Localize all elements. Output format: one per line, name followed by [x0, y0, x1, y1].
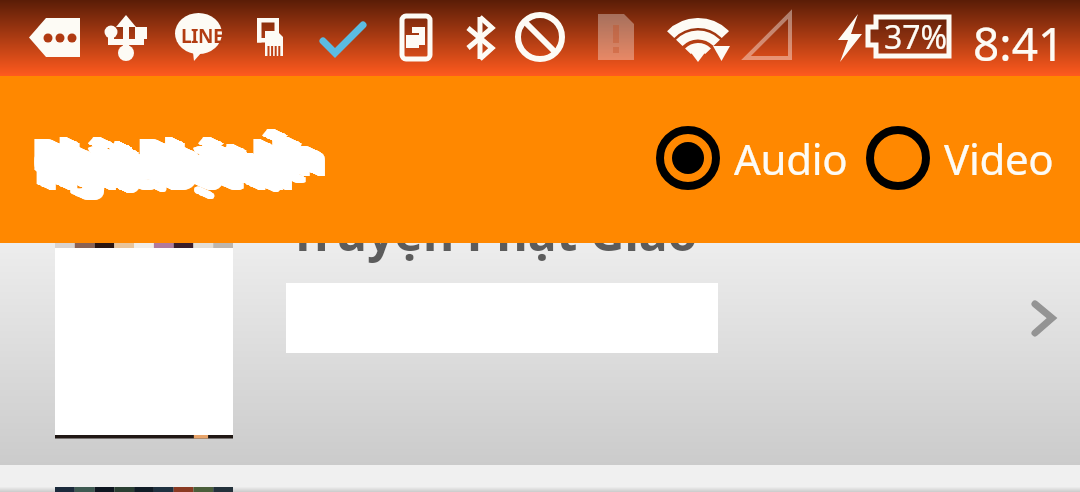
staticText: Chuyện Phật: [33, 131, 294, 190]
staticText: Phật Pháp Ứn: [44, 130, 328, 189]
staticText: Nghe Đọc Ki: [34, 138, 283, 197]
staticText: Nghe Đọc Ki: [41, 142, 290, 201]
staticText: Chuyện Phật: [42, 136, 303, 195]
staticText: Phật Pháp Ứn: [35, 126, 319, 185]
staticText: Chuyện Phật: [37, 133, 298, 192]
staticText: Chuyện Phật: [32, 131, 293, 190]
staticText: Nghe Đọc Ki: [45, 144, 294, 203]
staticText: Chuyện Phật: [34, 132, 295, 191]
staticText: Chuyện Phật: [40, 135, 301, 194]
staticText: Audio: [734, 130, 848, 187]
staticText: Phật Pháp Ứn: [33, 125, 317, 184]
staticText: Chuyện Phật: [44, 137, 305, 196]
staticText: Chuyện Phật: [36, 133, 297, 192]
staticText: 37%: [884, 15, 948, 59]
staticText: 8:41: [973, 12, 1065, 75]
staticText: Nghe Đọc Ki: [38, 141, 287, 200]
staticText: Chuyện Phật: [33, 132, 294, 191]
staticText: Phật Pháp Ứn: [36, 126, 320, 185]
staticText: Phật Pháp Ứn: [38, 127, 322, 186]
staticText: Phật Pháp Ứn: [42, 129, 326, 188]
staticText: Phật Pháp Ứn: [42, 129, 326, 188]
staticText: Chuyện Phật: [34, 132, 295, 191]
staticText: Nghe Đọc Ki: [38, 140, 287, 199]
staticText: Chuyện Phật: [41, 135, 302, 194]
staticText: Phật Pháp Ứn: [34, 125, 318, 184]
staticText: Chuyện Phật: [42, 135, 303, 194]
staticText: Nghe Đọc Ki: [35, 139, 284, 198]
staticText: Nghe Đọc Ki: [35, 139, 284, 198]
staticText: Chuyện Phật: [39, 134, 300, 193]
staticText: Phật Pháp Ứn: [43, 130, 327, 189]
staticText: Chuyện Phật: [38, 134, 299, 193]
staticText: Nghe Đọc Ki: [44, 143, 293, 202]
staticText: Nghe Đọc Ki: [46, 144, 295, 203]
staticText: Nghe Đọc Ki: [40, 141, 289, 200]
staticText: Chuyện Phật: [37, 134, 298, 193]
staticText: Chuyện Phật: [35, 132, 296, 191]
button[interactable]: Open: [0, 487, 1080, 492]
staticText: Nghe Đọc Ki: [44, 143, 293, 202]
staticText: Nghe Đọc Ki: [43, 142, 292, 201]
staticText: Nghe Đọc Ki: [42, 142, 291, 201]
staticText: Phật Pháp Ứn: [41, 128, 325, 187]
staticText: Video: [944, 130, 1054, 187]
staticText: Phật Pháp Ứn: [39, 128, 323, 187]
staticText: Phật Pháp Ứn: [32, 124, 316, 183]
staticText: Phật Pháp Ứn: [31, 124, 315, 183]
button[interactable]: Video: [860, 124, 1058, 192]
button[interactable]: Open: [0, 243, 1080, 465]
staticText: Phật Pháp Ứn: [33, 125, 317, 184]
staticText: Nghe Đọc Ki: [33, 138, 282, 197]
staticText: Phật Pháp Ứn: [40, 128, 324, 187]
staticText: Nghe Đọc Ki: [41, 142, 290, 201]
staticText: Chuyện Phật: [39, 134, 300, 193]
staticText: Chuyện Phật: [36, 133, 297, 192]
staticText: Nghe Đọc Ki: [43, 143, 292, 202]
staticText: Phật Pháp Ứn: [39, 128, 323, 187]
staticText: Chuyện Phật: [40, 135, 301, 194]
staticText: Chuyện Phật: [43, 136, 304, 195]
button[interactable]: Open: [1010, 288, 1074, 352]
staticText: Phật Pháp Ứn: [32, 125, 316, 184]
staticText: Phật Pháp Ứn: [41, 129, 325, 188]
staticText: Nghe Đọc Ki: [40, 141, 289, 200]
staticText: Phật Pháp Ứn: [35, 126, 319, 185]
staticText: Nghe Đọc Ki: [39, 141, 288, 200]
staticText: Nghe Đọc Ki: [37, 140, 286, 199]
staticText: Phật Pháp Ứn: [37, 127, 321, 186]
staticText: Nghe Đọc Ki: [37, 140, 286, 199]
staticText: Chuyện Phật: [43, 136, 304, 195]
staticText: Nghe Đọc Ki: [36, 139, 285, 198]
staticText: Phật Pháp Ứn: [36, 127, 320, 186]
staticText: Phật Pháp Ứn: [38, 127, 322, 186]
button[interactable]: Audio: [650, 124, 852, 192]
staticText: LINE: [181, 23, 224, 49]
staticText: Nghe Đọc Ki: [34, 139, 283, 198]
staticText: Truyện Phật Giáo: [289, 200, 698, 265]
staticText: Chuyện Phật: [45, 137, 306, 196]
